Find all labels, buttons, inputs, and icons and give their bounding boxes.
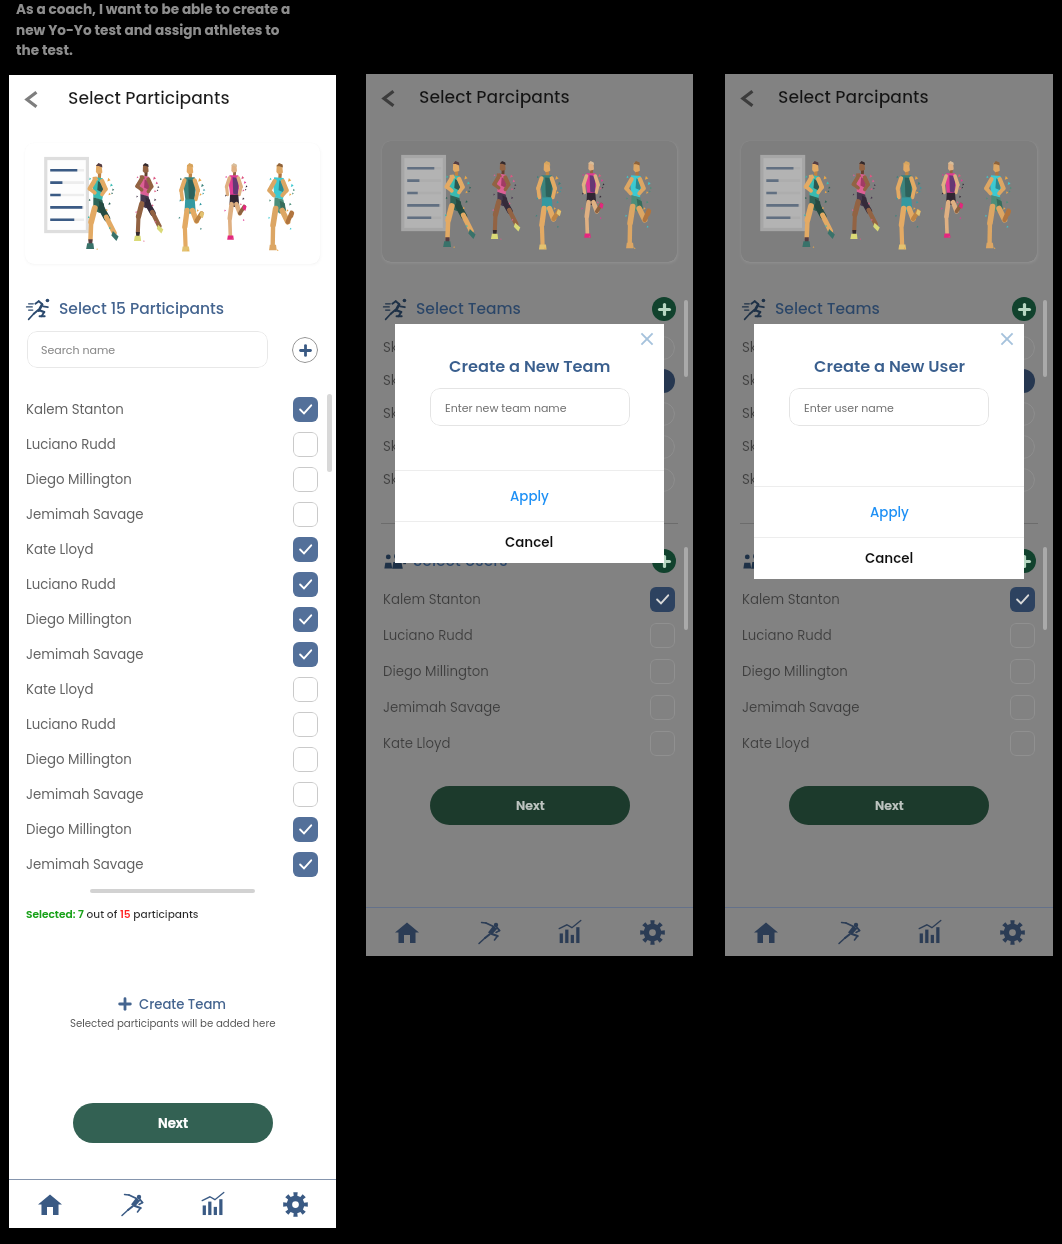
button[interactable]: Search name [27,331,268,368]
button[interactable]: Next [73,1103,273,1143]
button[interactable]: Add team [652,297,676,321]
button[interactable]: Sk [383,364,693,397]
button[interactable]: Not selected [293,712,318,737]
button[interactable]: Selected [293,852,318,877]
button[interactable]: Team not selected [1011,435,1035,459]
button[interactable]: Settings [971,908,1053,956]
button[interactable]: Selected [293,607,318,632]
button[interactable]: Cancel [395,522,664,563]
button[interactable]: Sk [742,397,1053,430]
button[interactable]: Not selected [1010,695,1035,720]
button[interactable]: Luciano Rudd [26,707,336,742]
button[interactable]: Not selected [293,502,318,527]
button[interactable]: Luciano Rudd [383,617,693,653]
button[interactable]: Not selected [293,432,318,457]
button[interactable]: Not selected [293,782,318,807]
button[interactable]: Selected [293,642,318,667]
button[interactable]: Back [366,76,410,120]
button[interactable]: Luciano Rudd [742,617,1053,653]
button[interactable]: Create Team [9,995,336,1013]
button[interactable]: Add user [1012,549,1036,573]
button[interactable]: Tests [447,908,529,956]
button[interactable]: Luciano Rudd [26,427,336,462]
button[interactable]: Sk [383,331,693,364]
button[interactable]: Kalem Stanton [26,392,336,427]
button[interactable]: Home [9,1180,90,1228]
button[interactable]: Close [998,330,1016,348]
button[interactable]: Add participant [292,337,318,363]
button[interactable]: Not selected [650,623,675,648]
button[interactable]: Statistics [889,908,971,956]
button[interactable]: Enter user name [789,388,989,426]
button[interactable]: Team not selected [651,468,675,492]
button[interactable]: Luciano Rudd [26,567,336,602]
button[interactable]: Jemimah Savage [26,497,336,532]
button[interactable]: Not selected [650,731,675,756]
button[interactable]: Jemimah Savage [383,689,693,725]
button[interactable]: Team selected [1011,369,1035,393]
button[interactable]: Not selected [650,695,675,720]
button[interactable]: Home [366,908,447,956]
button[interactable]: Cancel [754,538,1024,579]
button[interactable]: Back [725,76,769,120]
button[interactable]: Close [638,330,656,348]
button[interactable]: Team not selected [651,336,675,360]
button[interactable]: Not selected [293,467,318,492]
button[interactable]: Not selected [293,747,318,772]
button[interactable]: Add user [652,549,676,573]
button[interactable]: Sk [742,430,1053,463]
button[interactable]: Apply [395,471,664,521]
button[interactable]: Diego Millington [383,653,693,689]
button[interactable]: Tests [807,908,889,956]
button[interactable]: Next [430,786,630,825]
button[interactable]: Sk [742,463,1053,496]
button[interactable]: Diego Millington [26,812,336,847]
button[interactable]: Enter new team name [430,388,630,426]
button[interactable]: Kalem Stanton [742,581,1053,617]
button[interactable]: Not selected [1010,731,1035,756]
button[interactable]: Sk [742,364,1053,397]
button[interactable]: Team selected [651,369,675,393]
button[interactable]: Not selected [293,677,318,702]
button[interactable]: Home [725,908,807,956]
button[interactable]: Selected [1010,587,1035,612]
button[interactable]: Statistics [172,1180,254,1228]
button[interactable]: Jemimah Savage [26,847,336,882]
button[interactable]: Selected [293,817,318,842]
button[interactable]: Selected [293,537,318,562]
button[interactable]: Kate Lloyd [26,672,336,707]
button[interactable]: Sk [383,463,693,496]
button[interactable]: Kate Lloyd [742,725,1053,761]
button[interactable]: Settings [611,908,693,956]
button[interactable]: Not selected [1010,659,1035,684]
button[interactable]: Apply [754,487,1024,537]
button[interactable]: Add team [1012,297,1036,321]
button[interactable]: Not selected [650,659,675,684]
button[interactable]: Sk [742,331,1053,364]
button[interactable]: Diego Millington [26,602,336,637]
button[interactable]: Team not selected [651,402,675,426]
button[interactable]: Tests [90,1180,172,1228]
button[interactable]: Sk [383,397,693,430]
button[interactable]: Team not selected [1011,336,1035,360]
button[interactable]: Kate Lloyd [383,725,693,761]
button[interactable]: Team not selected [651,435,675,459]
button[interactable]: Sk [383,430,693,463]
button[interactable]: Next [789,786,989,825]
button[interactable]: Diego Millington [742,653,1053,689]
button[interactable]: Back [9,77,53,121]
button[interactable]: Kalem Stanton [383,581,693,617]
button[interactable]: Jemimah Savage [26,777,336,812]
button[interactable]: Diego Millington [26,462,336,497]
button[interactable]: Team not selected [1011,402,1035,426]
button[interactable]: Statistics [529,908,611,956]
button[interactable]: Settings [254,1180,336,1228]
button[interactable]: Diego Millington [26,742,336,777]
button[interactable]: Selected [650,587,675,612]
button[interactable]: Kate Lloyd [26,532,336,567]
button[interactable]: Team not selected [1011,468,1035,492]
button[interactable]: Not selected [1010,623,1035,648]
button[interactable]: Jemimah Savage [742,689,1053,725]
button[interactable]: Selected [293,397,318,422]
button[interactable]: Jemimah Savage [26,637,336,672]
